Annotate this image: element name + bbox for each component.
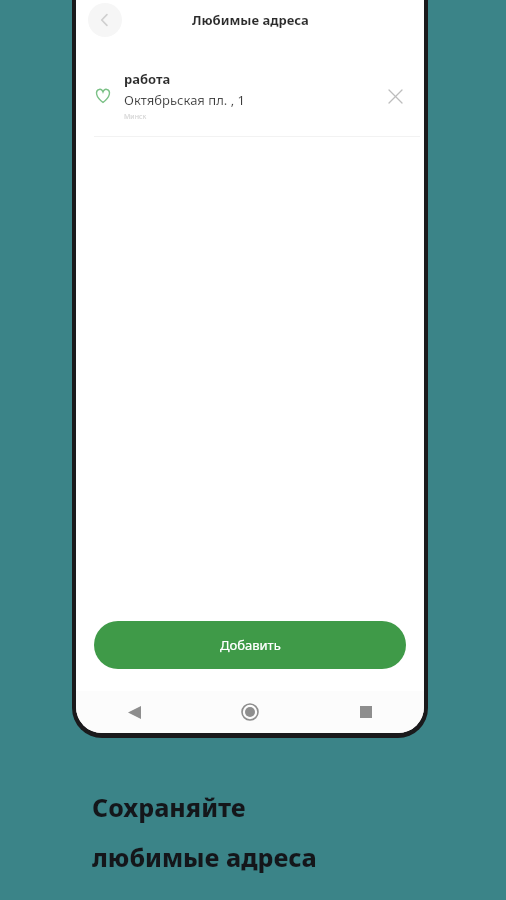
staticText: Сохраняйте	[92, 790, 246, 824]
button[interactable]: Добавить	[94, 621, 406, 669]
button[interactable]: Назад	[88, 3, 122, 37]
button[interactable]: Recents	[349, 695, 383, 729]
staticText: Октябрьская пл. , 1	[124, 91, 245, 109]
button[interactable]: Back	[117, 695, 151, 729]
staticText: Добавить	[220, 636, 281, 654]
button[interactable]: Удалить	[380, 81, 410, 111]
staticText: любимые адреса	[92, 840, 317, 874]
button[interactable]: Home	[233, 695, 267, 729]
button[interactable]: работа	[76, 66, 424, 136]
staticText: Минск	[124, 112, 147, 122]
staticText: работа	[124, 70, 171, 88]
staticText: Любимые адреса	[192, 11, 309, 29]
